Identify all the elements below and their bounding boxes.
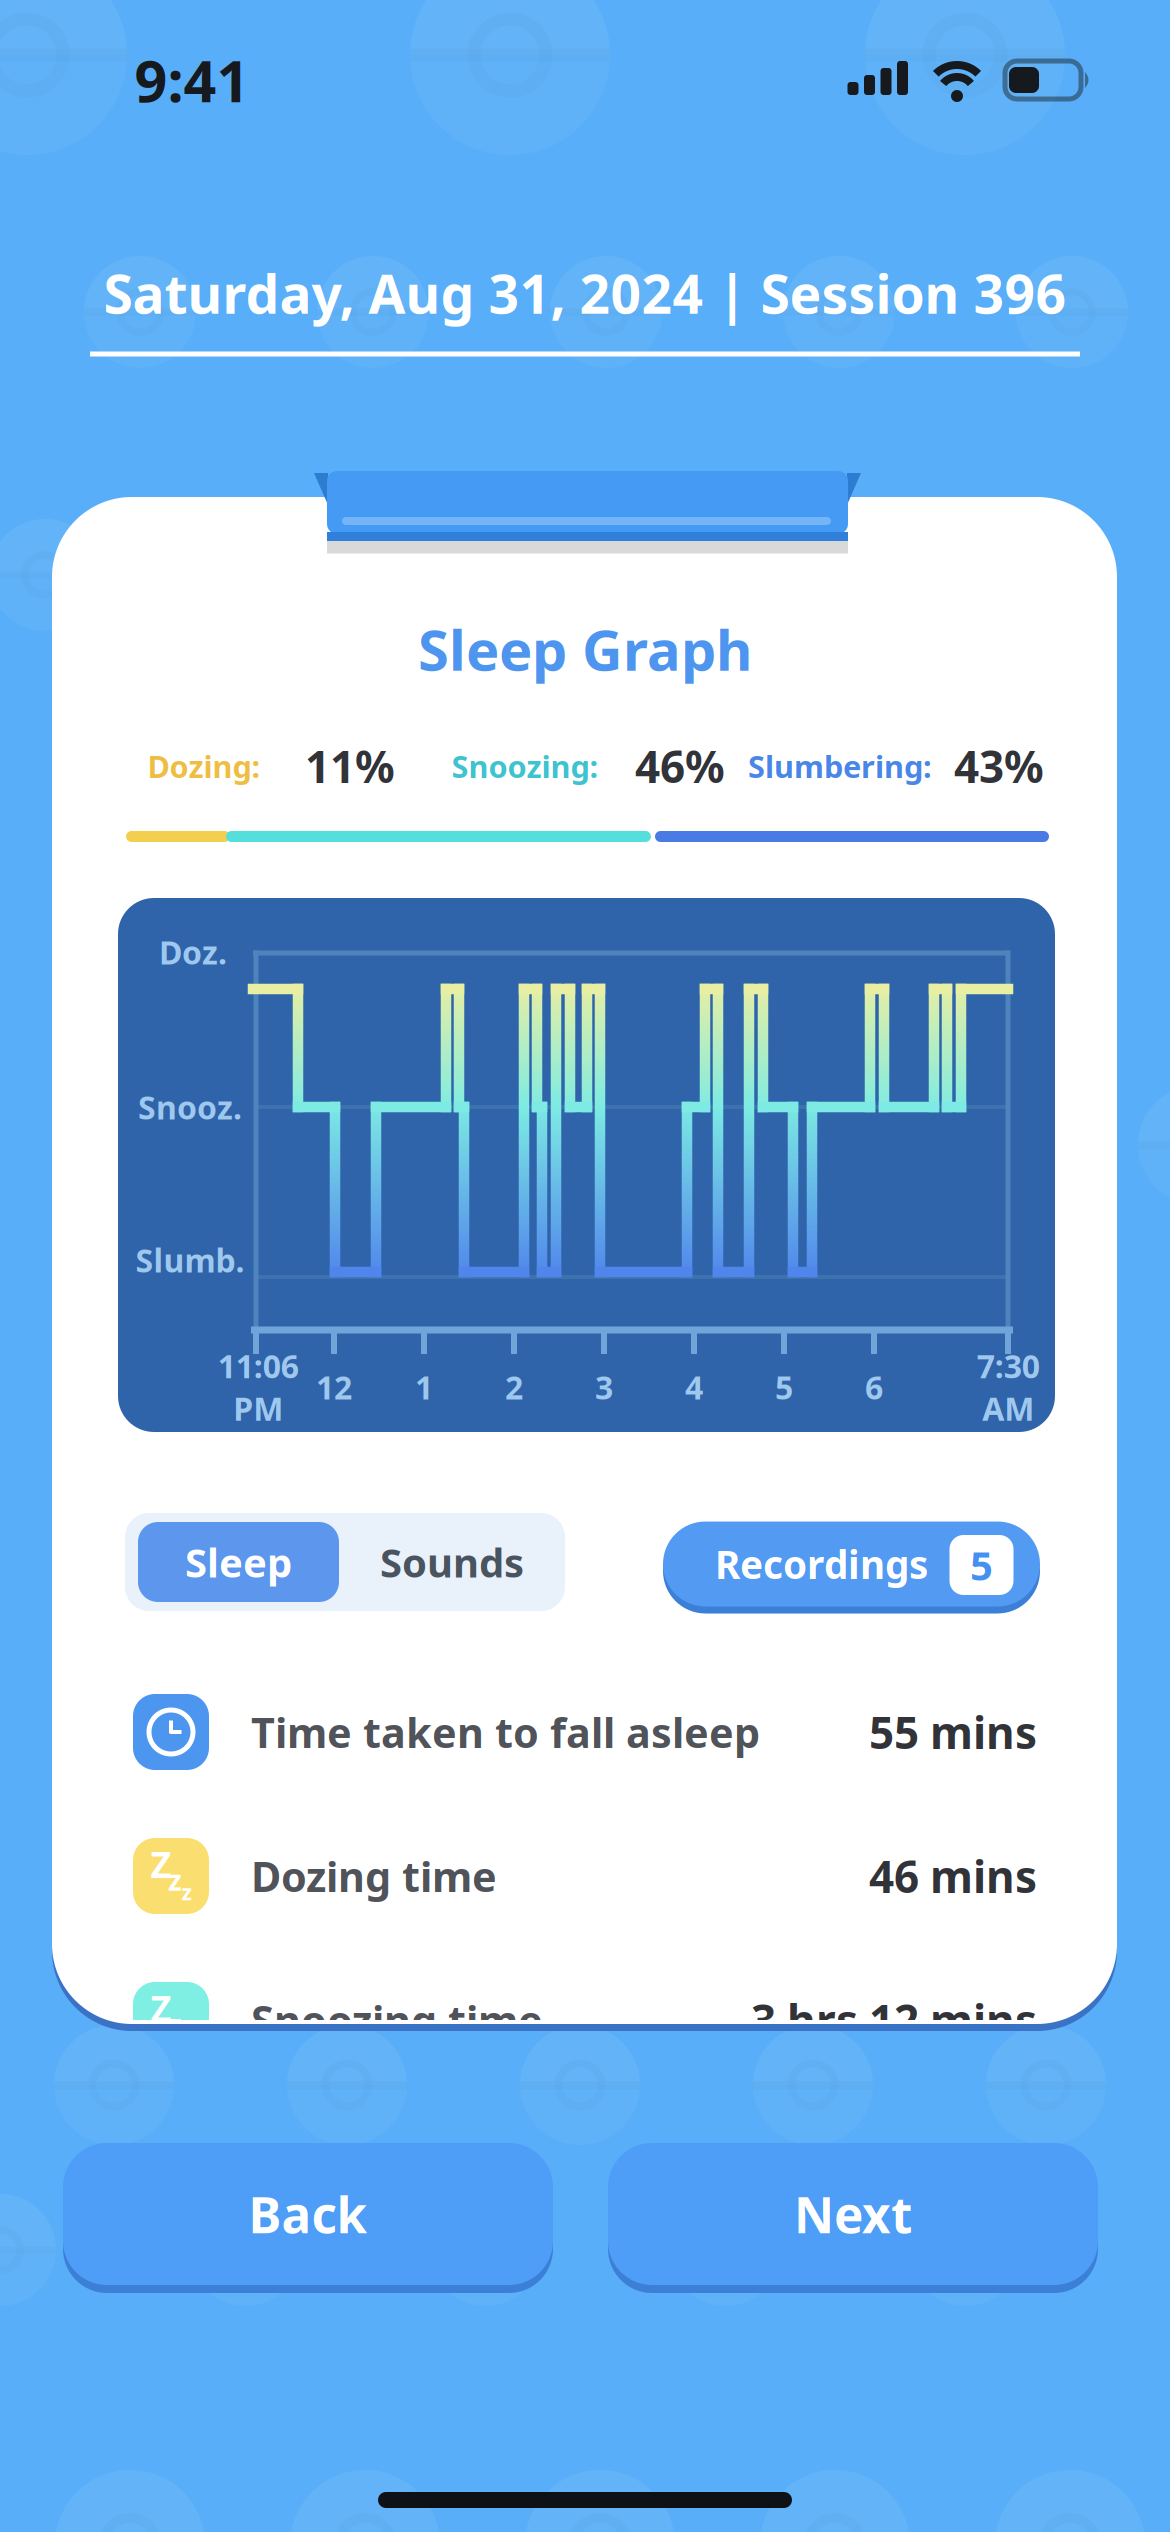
button[interactable]: Recordings [663, 1516, 1040, 1611]
button[interactable]: Next [608, 2139, 1098, 2289]
staticText: Z [150, 1984, 171, 2032]
button[interactable]: Sleep [138, 1522, 339, 1602]
staticText: Saturday, Aug 31, 2024 | Session 396 [103, 258, 1066, 328]
staticText: Recordings [715, 1538, 928, 1590]
staticText: 4 [685, 1366, 703, 1408]
staticText: 46 mins [869, 1847, 1037, 1905]
staticText: Snooz. [138, 1086, 242, 1128]
staticText: 11:06 PM [217, 1344, 298, 1429]
staticText: 7:30 AM [976, 1344, 1039, 1429]
staticText: Next [794, 2181, 912, 2247]
staticText: Back [248, 2181, 367, 2247]
staticText: 43% [954, 737, 1044, 795]
staticText: 9:41 [134, 42, 249, 118]
staticText: Doz. [159, 931, 227, 973]
staticText: Slumbering: [748, 746, 932, 786]
staticText: z [168, 1861, 182, 1899]
staticText: Slumb. [135, 1239, 244, 1281]
staticText: 11% [305, 737, 395, 795]
staticText: 1 [415, 1366, 433, 1408]
staticText: Sounds [380, 1535, 524, 1588]
staticText: 55 mins [869, 1703, 1037, 1761]
staticText: Snoozing time [251, 1993, 543, 2047]
button[interactable]: Sounds [347, 1522, 557, 1602]
button[interactable]: Back [63, 2139, 553, 2289]
staticText: z [181, 1878, 192, 1906]
staticText: Sleep Graph [418, 612, 752, 686]
staticText: 46% [635, 737, 725, 795]
staticText: 5 [970, 1538, 993, 1591]
staticText: 5 [775, 1366, 793, 1408]
staticText: 12 [316, 1366, 352, 1408]
staticText: Snoozing: [451, 746, 598, 786]
staticText: Time taken to fall asleep [251, 1705, 760, 1759]
staticText: z [168, 2005, 182, 2043]
staticText: 6 [865, 1366, 883, 1408]
staticText: Dozing time [251, 1849, 497, 1903]
staticText: z [181, 2022, 192, 2050]
staticText: 3 hrs 12 mins [751, 1991, 1037, 2049]
staticText: Sleep [185, 1535, 292, 1588]
staticText: 3 [595, 1366, 613, 1408]
staticText: Dozing: [147, 746, 260, 786]
staticText: Z [150, 1840, 171, 1888]
staticText: 2 [505, 1366, 523, 1408]
